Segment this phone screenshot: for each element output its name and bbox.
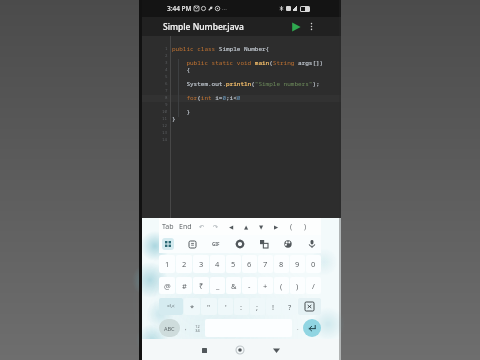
staticText: ( — [290, 222, 293, 232]
staticText: 7 — [165, 88, 168, 94]
staticText: 3:44 PM — [167, 4, 192, 13]
button[interactable]: - — [242, 277, 257, 294]
staticText: ! — [272, 302, 275, 312]
button[interactable]: / — [306, 277, 321, 294]
staticText: 14 — [162, 137, 168, 143]
button[interactable]: 6 — [242, 255, 257, 273]
staticText: 10 — [162, 109, 168, 115]
button[interactable]: ? — [282, 298, 297, 315]
staticText: _ — [216, 281, 220, 291]
button[interactable]: Keyboard modes — [162, 238, 174, 250]
button[interactable]: ▲ — [243, 224, 250, 230]
staticText: ) — [304, 222, 307, 232]
button[interactable]: ABC — [159, 319, 180, 337]
button[interactable]: Enter — [303, 319, 321, 337]
staticText: ; — [256, 302, 259, 312]
staticText: 2 — [165, 53, 168, 59]
button[interactable]: Stickers — [186, 238, 198, 250]
button[interactable]: " — [201, 298, 217, 315]
button[interactable]: ▼ — [258, 224, 265, 230]
button[interactable]: ' — [218, 298, 233, 315]
button[interactable]: ) — [303, 222, 308, 232]
button[interactable]: Backspace — [298, 298, 321, 315]
staticText: 9 — [165, 102, 168, 108]
button[interactable]: 3 — [193, 255, 209, 273]
staticText: 2 — [182, 259, 187, 269]
button[interactable]: Period — [292, 319, 303, 337]
button[interactable]: 5 — [226, 255, 241, 273]
button[interactable]: 1 — [159, 255, 175, 273]
button[interactable]: ( — [289, 222, 294, 232]
staticText: 8 — [279, 259, 284, 269]
button[interactable]: ! — [266, 298, 281, 315]
staticText: ₹ — [199, 281, 204, 291]
staticText: " — [207, 302, 211, 312]
button[interactable]: Run — [288, 19, 303, 34]
button[interactable]: =\< — [159, 298, 183, 315]
staticText: ' — [225, 302, 227, 312]
staticText: - — [248, 281, 251, 291]
staticText: } — [172, 115, 176, 122]
staticText: public class Simple Number{ — [172, 45, 270, 52]
button[interactable]: ◀ — [228, 224, 235, 230]
staticText: System.out.println("Simple numbers"); — [172, 80, 320, 87]
button[interactable]: ▶ — [273, 224, 280, 230]
button[interactable]: Themes — [282, 238, 294, 250]
button[interactable]: Numbers — [191, 319, 203, 337]
button[interactable]: _ — [210, 277, 225, 294]
button[interactable]: Comma — [180, 319, 191, 337]
button[interactable]: Translate — [258, 238, 270, 250]
staticText: End — [179, 222, 192, 232]
button[interactable]: More options — [305, 20, 318, 33]
button[interactable]: : — [234, 298, 249, 315]
button[interactable]: 9 — [290, 255, 305, 273]
button[interactable]: ( — [274, 277, 289, 294]
button[interactable]: ↶ — [198, 223, 206, 230]
button[interactable]: * — [184, 298, 200, 315]
button[interactable]: GIF — [210, 238, 222, 250]
button[interactable]: 4 — [210, 255, 225, 273]
staticText: ▲ — [244, 224, 249, 230]
staticText: * — [190, 302, 195, 312]
button[interactable]: Recents — [196, 342, 212, 358]
button[interactable]: Settings — [234, 238, 246, 250]
button[interactable]: ) — [290, 277, 305, 294]
button[interactable]: ₹ — [193, 277, 209, 294]
staticText: 5 — [165, 74, 168, 80]
staticText: # — [182, 281, 187, 291]
button[interactable]: @ — [159, 277, 175, 294]
staticText: 3 — [165, 60, 168, 66]
staticText: @ — [164, 281, 171, 291]
button[interactable]: Home — [232, 342, 248, 358]
staticText: 1 — [165, 259, 170, 269]
button[interactable]: 8 — [274, 255, 289, 273]
staticText: ( — [280, 281, 283, 291]
button[interactable]: 7 — [258, 255, 273, 273]
staticText: Simple Number.java — [163, 21, 244, 33]
button[interactable]: Tab — [161, 222, 175, 232]
button[interactable]: ; — [250, 298, 265, 315]
staticText: ABC — [164, 325, 175, 332]
staticText: { — [172, 66, 191, 73]
staticText: 9 — [295, 259, 300, 269]
staticText: 5 — [231, 259, 236, 269]
staticText: ▼ — [259, 224, 264, 230]
staticText: ▶ — [274, 224, 279, 230]
button[interactable]: ↷ — [212, 223, 220, 230]
staticText: 0 — [311, 259, 316, 269]
button[interactable]: End — [178, 222, 193, 232]
button[interactable]: # — [176, 277, 192, 294]
button[interactable]: & — [226, 277, 241, 294]
staticText: 12 34 — [195, 324, 200, 333]
staticText: + — [263, 281, 268, 291]
staticText: public static void main(String args[]) — [172, 59, 324, 66]
button[interactable]: 2 — [176, 255, 192, 273]
button[interactable]: 0 — [306, 255, 321, 273]
button[interactable]: Back — [268, 342, 284, 358]
button[interactable]: + — [258, 277, 273, 294]
staticText: ? — [288, 302, 292, 312]
button[interactable]: Voice input — [306, 238, 318, 250]
staticText: ) — [296, 281, 299, 291]
staticText: & — [231, 281, 237, 291]
